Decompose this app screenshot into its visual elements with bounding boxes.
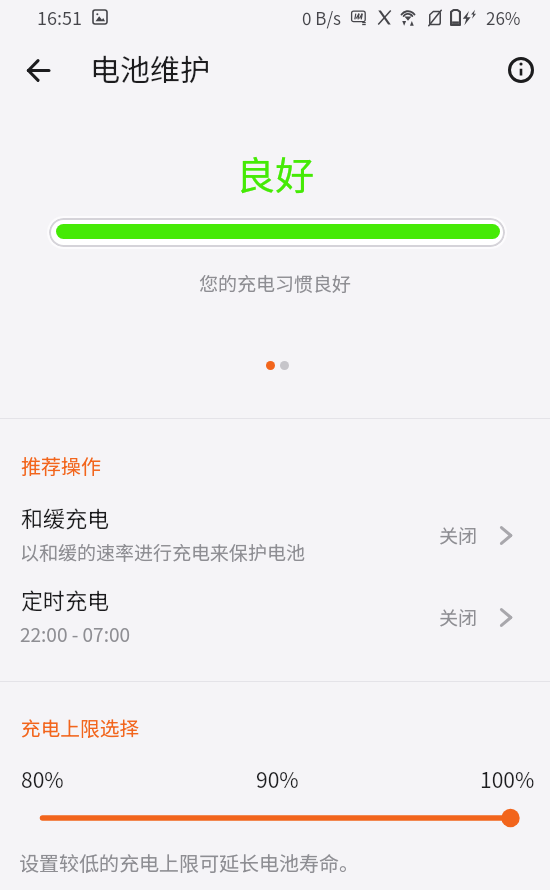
staticText: 设置较低的充电上限可延长电池寿命。 <box>19 848 359 877</box>
staticText: 26% <box>486 5 521 30</box>
button[interactable]: 和缓充电 <box>0 497 550 569</box>
staticText: 关闭 <box>439 603 478 631</box>
button[interactable]: 定时充电 <box>0 579 550 651</box>
staticText: 您的充电习惯良好 <box>0 269 550 297</box>
button[interactable]: Info <box>498 47 544 93</box>
staticText: 16:51 <box>37 4 82 30</box>
staticText: 关闭 <box>439 521 478 549</box>
staticText: 定时充电 <box>21 583 110 615</box>
staticText: 推荐操作 <box>21 451 101 480</box>
button[interactable]: Back <box>14 46 63 95</box>
staticText: 80% <box>21 764 64 794</box>
staticText: 充电上限选择 <box>21 713 140 742</box>
staticText: 以和缓的速率进行充电来保护电池 <box>20 538 306 566</box>
staticText: 和缓充电 <box>21 501 110 533</box>
staticText: 90% <box>256 764 299 794</box>
button[interactable]: Charging limit slider <box>0 800 550 836</box>
staticText: 0 B/s <box>302 5 342 30</box>
staticText: 22:00 - 07:00 <box>20 620 131 648</box>
staticText: 电池维护 <box>90 46 210 89</box>
staticText: 100% <box>480 764 535 794</box>
staticText: 良好 <box>0 145 550 201</box>
